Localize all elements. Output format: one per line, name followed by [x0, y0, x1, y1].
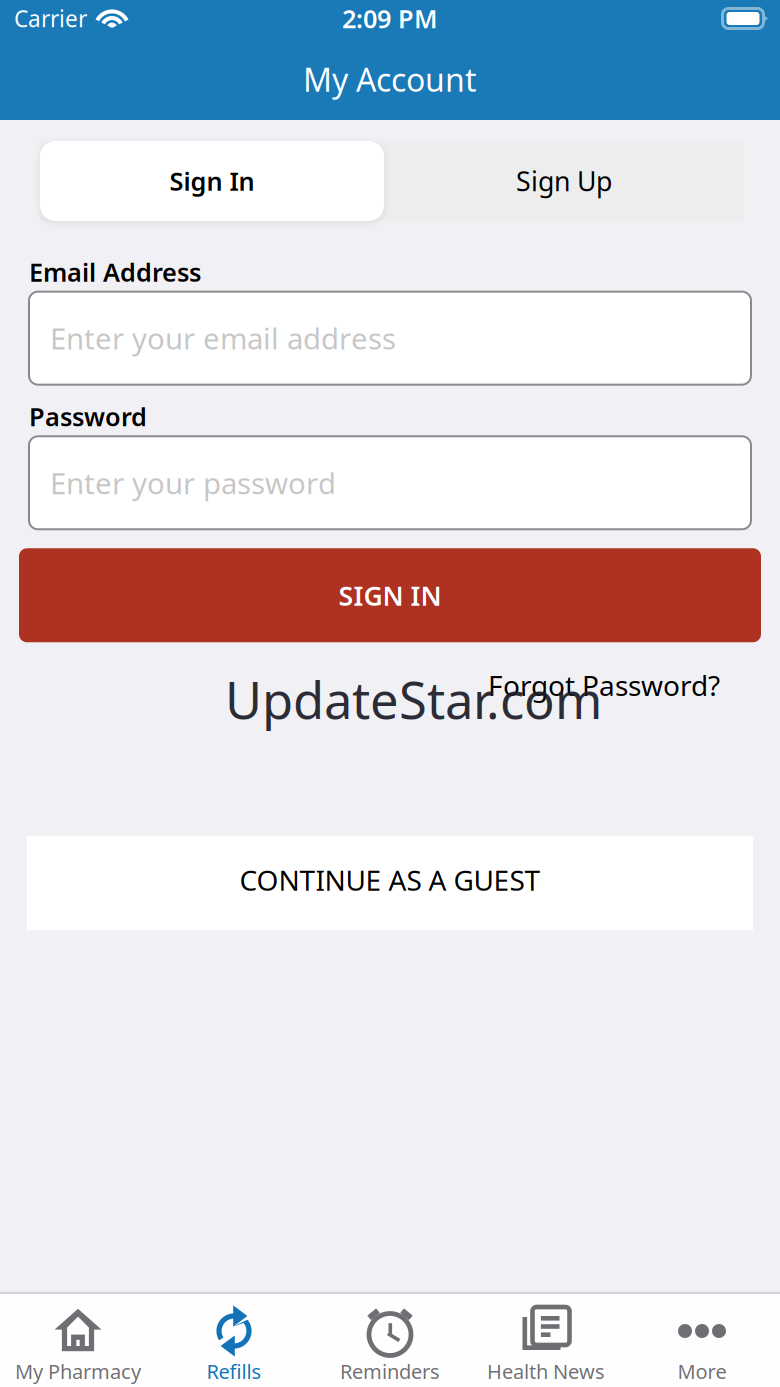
button[interactable]: SIGN IN [19, 548, 761, 642]
staticText: Email Address [29, 255, 201, 289]
staticText: Reminders [340, 1358, 440, 1385]
staticText: Enter your email address [50, 319, 396, 358]
staticText: Carrier [14, 3, 87, 33]
button[interactable]: Reminders [312, 1294, 468, 1387]
button[interactable]: Sign In [40, 141, 384, 221]
button[interactable]: CONTINUE AS A GUEST [27, 836, 753, 930]
staticText: My Account [303, 58, 477, 100]
staticText: UpdateStar.com [225, 666, 602, 733]
staticText: Forgot Password? [488, 667, 720, 704]
staticText: Sign Up [516, 163, 612, 199]
staticText: More [677, 1358, 726, 1385]
button[interactable]: Forgot Password? [488, 667, 720, 704]
button[interactable]: My Pharmacy [0, 1294, 156, 1387]
staticText: Refills [206, 1358, 261, 1385]
staticText: Health News [487, 1358, 605, 1385]
button[interactable]: Health News [468, 1294, 624, 1387]
staticText: Enter your password [50, 463, 336, 502]
button[interactable]: Sign Up [384, 141, 744, 221]
button[interactable]: More [624, 1294, 780, 1387]
button[interactable]: Refills [156, 1294, 312, 1387]
staticText: 2:09 PM [342, 2, 438, 35]
staticText: My Pharmacy [15, 1358, 141, 1385]
staticText: CONTINUE AS A GUEST [239, 861, 540, 898]
staticText: SIGN IN [338, 578, 441, 613]
staticText: Password [29, 400, 147, 433]
staticText: Sign In [169, 164, 254, 198]
